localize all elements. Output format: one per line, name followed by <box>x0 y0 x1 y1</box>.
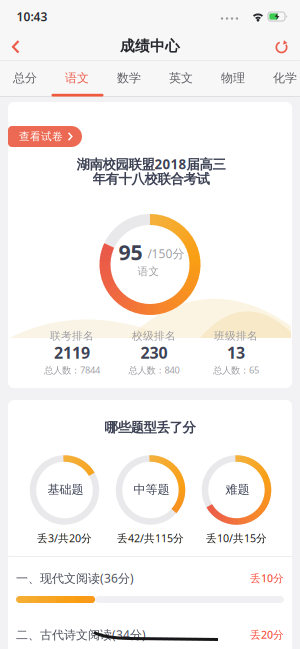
staticText: 中等题 <box>133 482 169 497</box>
staticText: 丢3/共20分 <box>37 531 92 545</box>
staticText: 丢10分 <box>250 571 284 585</box>
button[interactable]: 语文 <box>51 61 103 95</box>
button[interactable] <box>264 30 298 64</box>
staticText: 13 <box>227 342 245 363</box>
staticText: 数学 <box>117 71 141 85</box>
staticText: 2119 <box>54 342 90 363</box>
staticText: 湖南校园联盟2018届高三 <box>76 155 225 173</box>
staticText: 总分 <box>13 71 37 85</box>
staticText: 总人数：7844 <box>44 364 100 376</box>
staticText: 230 <box>140 342 167 363</box>
staticText: 物理 <box>221 71 245 85</box>
button[interactable]: 总分 <box>0 61 51 95</box>
staticText: 校级排名 <box>132 329 176 342</box>
staticText: 联考排名 <box>50 329 94 342</box>
button[interactable] <box>2 29 32 63</box>
staticText: 班级排名 <box>214 329 258 342</box>
button[interactable]: 查看试卷 <box>8 126 82 147</box>
button[interactable]: 物理 <box>207 61 259 95</box>
staticText: 二、古代诗文阅读(34分) <box>16 626 146 642</box>
staticText: 总人数：65 <box>213 364 259 376</box>
staticText: 10:43 <box>16 8 47 24</box>
staticText: 查看试卷 <box>19 130 63 143</box>
button[interactable]: 化学 <box>259 61 300 95</box>
staticText: 语文 <box>65 71 89 85</box>
staticText: 语文 <box>137 265 159 278</box>
staticText: 一、现代文阅读(36分) <box>16 570 134 586</box>
staticText: 成绩中心 <box>120 37 180 55</box>
staticText: 总人数：840 <box>128 364 179 376</box>
staticText: 英文 <box>169 71 193 85</box>
button[interactable]: 数学 <box>103 61 155 95</box>
staticText: 丢20分 <box>250 627 284 642</box>
button[interactable]: 二、古代诗文阅读(34分) <box>16 621 284 647</box>
staticText: 难题 <box>225 482 249 497</box>
staticText: 丢42/共115分 <box>117 531 184 545</box>
staticText: 化学 <box>273 71 297 85</box>
staticText: 95 <box>118 238 142 266</box>
button[interactable]: 一、现代文阅读(36分) <box>16 565 284 591</box>
staticText: 年有十八校联合考试 <box>92 171 209 187</box>
staticText: 哪些题型丢了分 <box>104 419 195 436</box>
staticText: /150分 <box>147 245 184 261</box>
staticText: 基础题 <box>47 482 83 497</box>
staticText: 丢10/共15分 <box>206 531 267 545</box>
button[interactable]: 英文 <box>155 61 207 95</box>
